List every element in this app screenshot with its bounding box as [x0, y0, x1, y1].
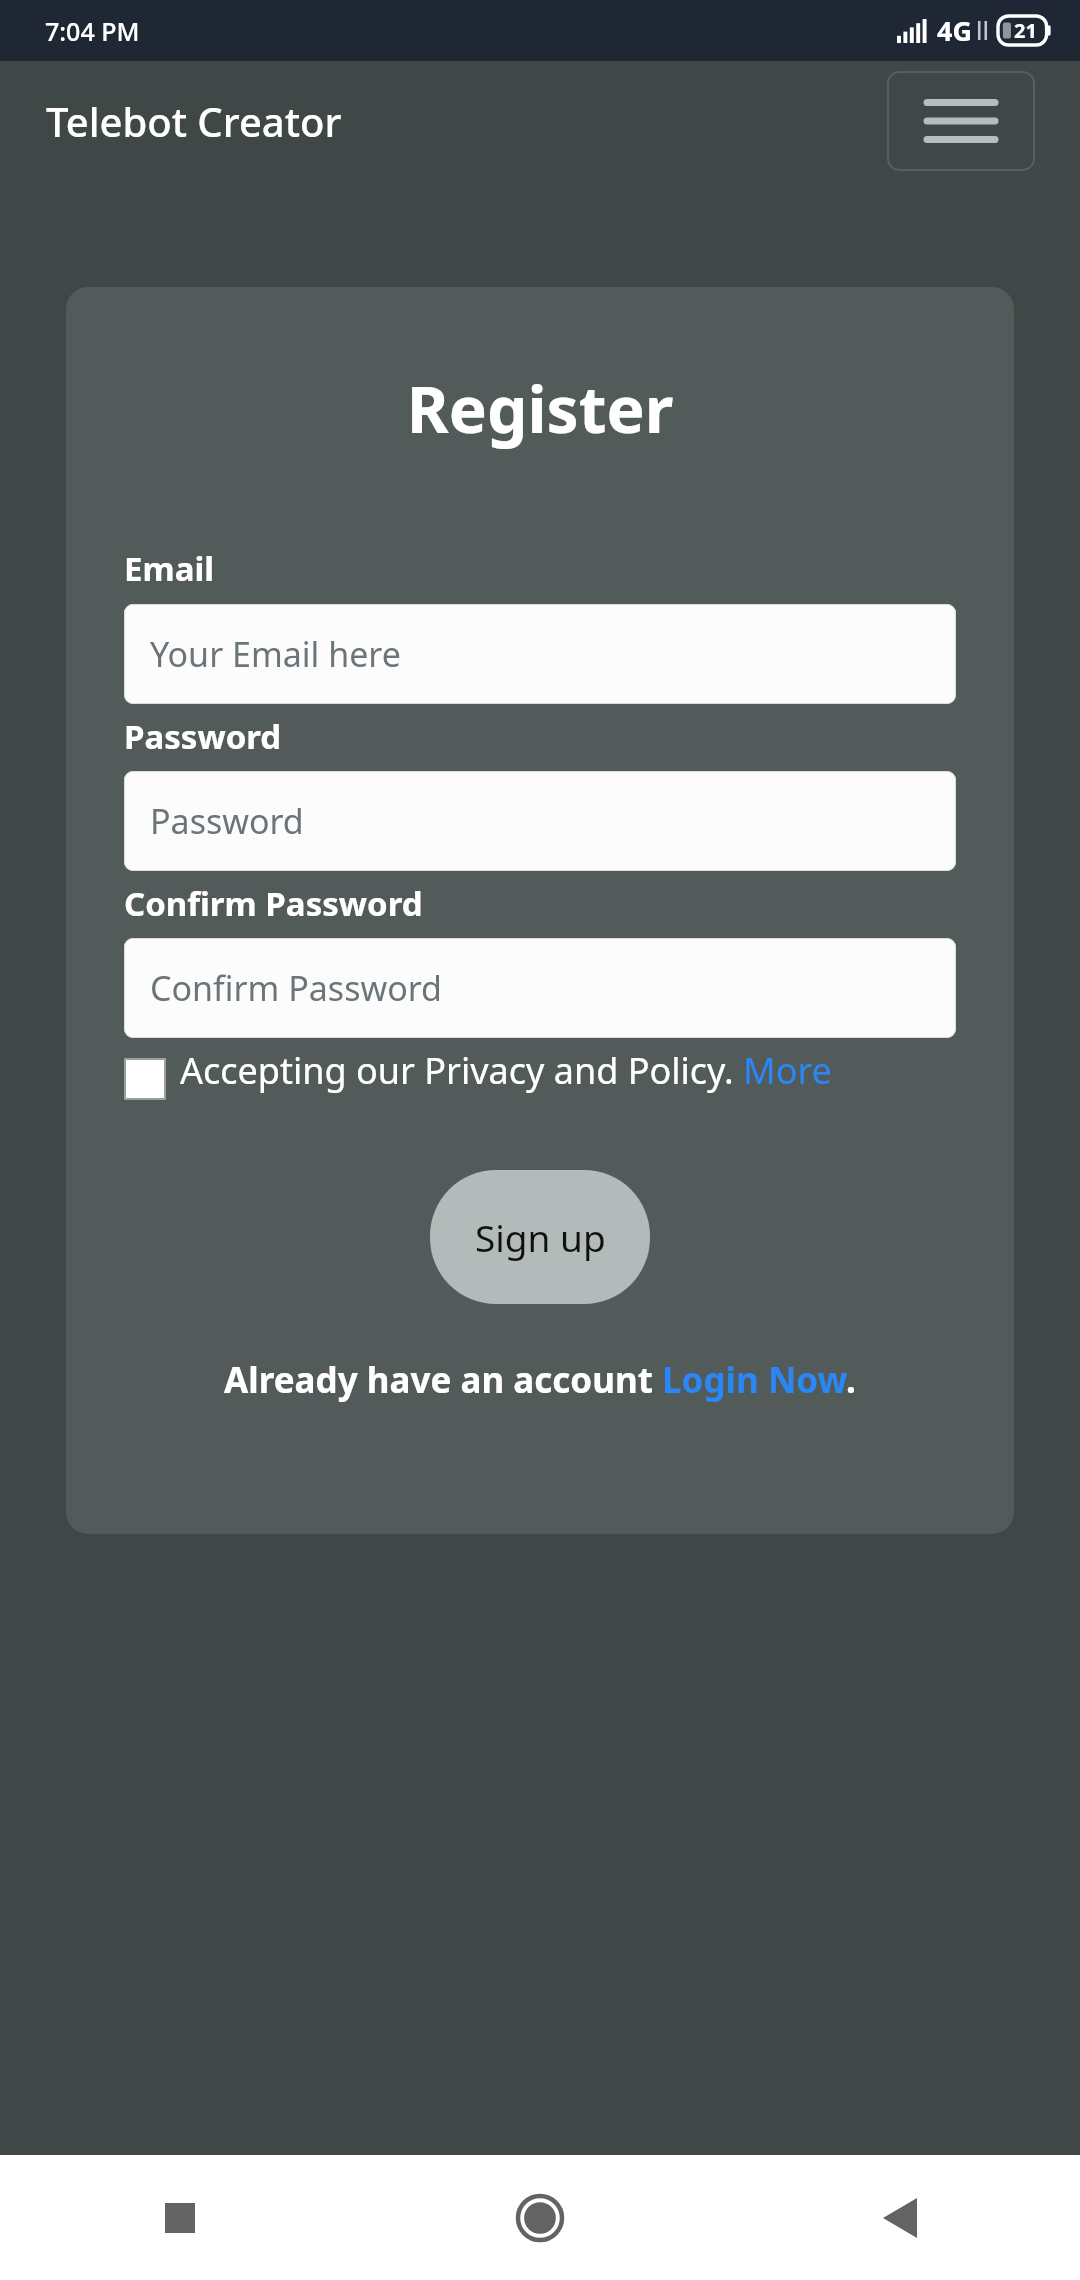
button[interactable]: Password: [124, 771, 956, 871]
staticText: 7:04 PM: [45, 14, 140, 48]
staticText: Confirm Password: [150, 965, 442, 1011]
button[interactable]: Back: [720, 2155, 1080, 2280]
staticText: Password: [124, 714, 282, 759]
button[interactable]: Home: [360, 2155, 720, 2280]
staticText: Confirm Password: [124, 881, 423, 926]
staticText: Telebot Creator: [46, 94, 342, 148]
button[interactable]: Your Email here: [124, 604, 956, 704]
staticText: Already have an account Login Now.: [120, 1356, 960, 1404]
staticText: Register: [66, 365, 1014, 452]
staticText: Sign up: [475, 1212, 606, 1262]
staticText: Password: [150, 798, 304, 844]
staticText: Email: [124, 546, 215, 591]
button[interactable]: Sign up: [430, 1170, 650, 1304]
button[interactable]: Already have an account Login Now.: [120, 1356, 960, 1404]
staticText: 21: [1014, 17, 1037, 44]
button[interactable]: Recent apps: [0, 2155, 360, 2280]
button[interactable]: Accepting our Privacy and Policy. More: [124, 1046, 956, 1100]
staticText: 4G: [937, 12, 972, 49]
button[interactable]: Confirm Password: [124, 938, 956, 1038]
staticText: Your Email here: [150, 631, 401, 677]
staticText: Accepting our Privacy and Policy. More: [180, 1046, 832, 1095]
button[interactable]: Open menu: [887, 71, 1035, 171]
